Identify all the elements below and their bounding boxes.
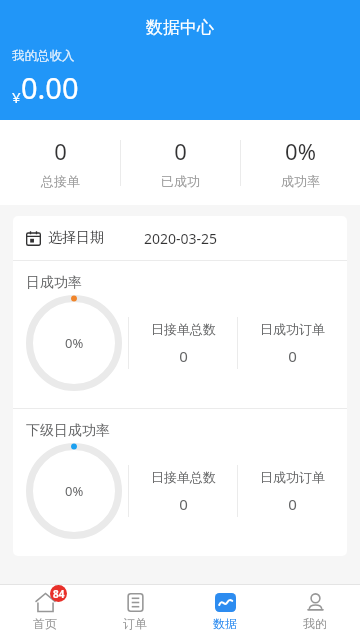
staticText: ¥ bbox=[12, 87, 21, 107]
staticText: 0 bbox=[179, 494, 188, 514]
button[interactable]: 日成功率 bbox=[13, 261, 347, 408]
staticText: 数据中心 bbox=[146, 17, 214, 38]
button[interactable]: 下级日成功率 bbox=[13, 409, 347, 556]
staticText: 0% bbox=[65, 334, 84, 352]
staticText: 下级日成功率 bbox=[26, 422, 110, 440]
button[interactable]: 0 bbox=[121, 130, 240, 195]
staticText: 已成功 bbox=[161, 173, 200, 189]
staticText: 0 bbox=[54, 136, 67, 166]
button[interactable]: 0 bbox=[0, 130, 120, 195]
staticText: 2020-03-25 bbox=[144, 229, 218, 248]
staticText: 总接单 bbox=[41, 173, 80, 189]
staticText: 选择日期 bbox=[48, 229, 104, 247]
staticText: 0% bbox=[285, 136, 316, 166]
staticText: 0 bbox=[174, 136, 187, 166]
staticText: 我的 bbox=[303, 616, 327, 631]
button[interactable]: 0% bbox=[241, 130, 360, 195]
staticText: 0 bbox=[288, 494, 297, 514]
staticText: 日成功订单 bbox=[260, 321, 325, 337]
staticText: 日成功率 bbox=[26, 274, 82, 292]
button[interactable]: 首页 bbox=[0, 585, 90, 638]
staticText: 日成功订单 bbox=[260, 469, 325, 485]
staticText: 0 bbox=[288, 346, 297, 366]
staticText: 日接单总数 bbox=[151, 469, 216, 485]
staticText: 0 bbox=[179, 346, 188, 366]
staticText: 订单 bbox=[123, 616, 147, 631]
staticText: 我的总收入 bbox=[12, 48, 75, 64]
staticText: 0.00 bbox=[21, 68, 79, 107]
staticText: 数据 bbox=[213, 616, 237, 631]
staticText: 日接单总数 bbox=[151, 321, 216, 337]
button[interactable]: 订单 bbox=[90, 585, 180, 638]
button[interactable]: 我的 bbox=[270, 585, 360, 638]
staticText: 成功率 bbox=[281, 173, 320, 189]
staticText: 0% bbox=[65, 482, 84, 500]
staticText: 首页 bbox=[33, 616, 57, 631]
button[interactable]: 数据 bbox=[180, 585, 270, 638]
button[interactable]: 选择日期 bbox=[13, 216, 347, 260]
staticText: 84 bbox=[53, 587, 65, 601]
